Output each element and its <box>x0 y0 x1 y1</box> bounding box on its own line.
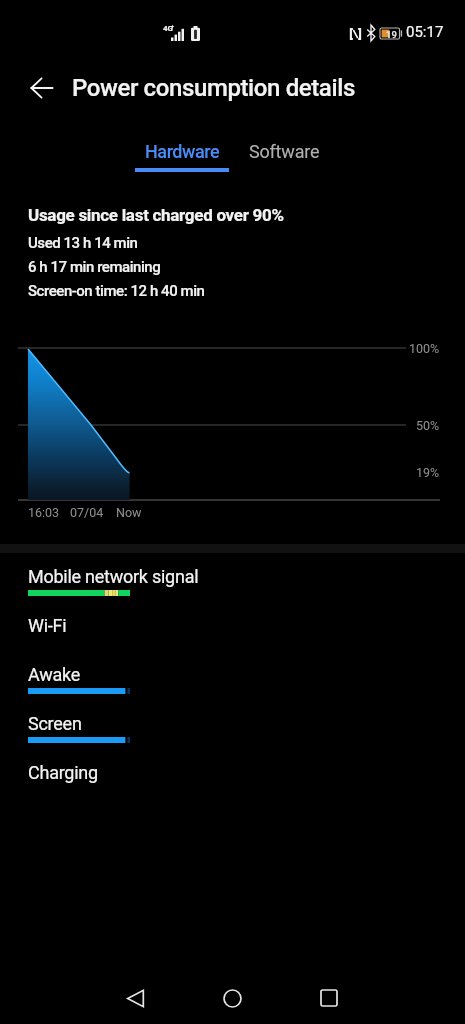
staticText: Software <box>249 141 320 162</box>
staticText: 6 h 17 min remaining <box>28 258 161 276</box>
staticText: 100% <box>409 341 440 356</box>
staticText: Usage since last charged over 90% <box>28 205 284 225</box>
button[interactable]: Awake <box>0 664 465 710</box>
staticText: 19 <box>386 29 397 40</box>
button[interactable]: Back <box>111 974 159 1022</box>
button[interactable]: Recents <box>305 974 353 1022</box>
staticText: 19% <box>416 465 440 480</box>
button[interactable]: Wi-Fi <box>0 615 465 661</box>
staticText: Awake <box>28 664 81 685</box>
staticText: Hardware <box>145 141 220 162</box>
button[interactable]: Hardware <box>129 129 235 185</box>
staticText: 07/04 <box>70 505 104 520</box>
staticText: Charging <box>28 762 98 783</box>
button[interactable]: Screen <box>0 713 465 759</box>
button[interactable]: Software <box>237 129 331 185</box>
staticText: 4G <box>163 24 174 33</box>
button[interactable]: Back <box>18 64 66 112</box>
staticText: 16:03 <box>28 505 60 520</box>
button[interactable]: Charging <box>0 762 465 808</box>
staticText: Mobile network signal <box>28 566 199 587</box>
staticText: Power consumption details <box>72 74 355 102</box>
staticText: 05:17 <box>406 23 444 41</box>
staticText: + <box>171 23 175 29</box>
button[interactable]: Mobile network signal <box>0 566 465 612</box>
staticText: Wi-Fi <box>28 615 67 636</box>
staticText: Used 13 h 14 min <box>28 234 138 252</box>
staticText: 50% <box>416 418 440 433</box>
staticText: Now <box>116 505 142 520</box>
staticText: Screen <box>28 713 82 734</box>
staticText: Screen-on time: 12 h 40 min <box>28 282 205 300</box>
button[interactable]: Home <box>208 974 256 1022</box>
